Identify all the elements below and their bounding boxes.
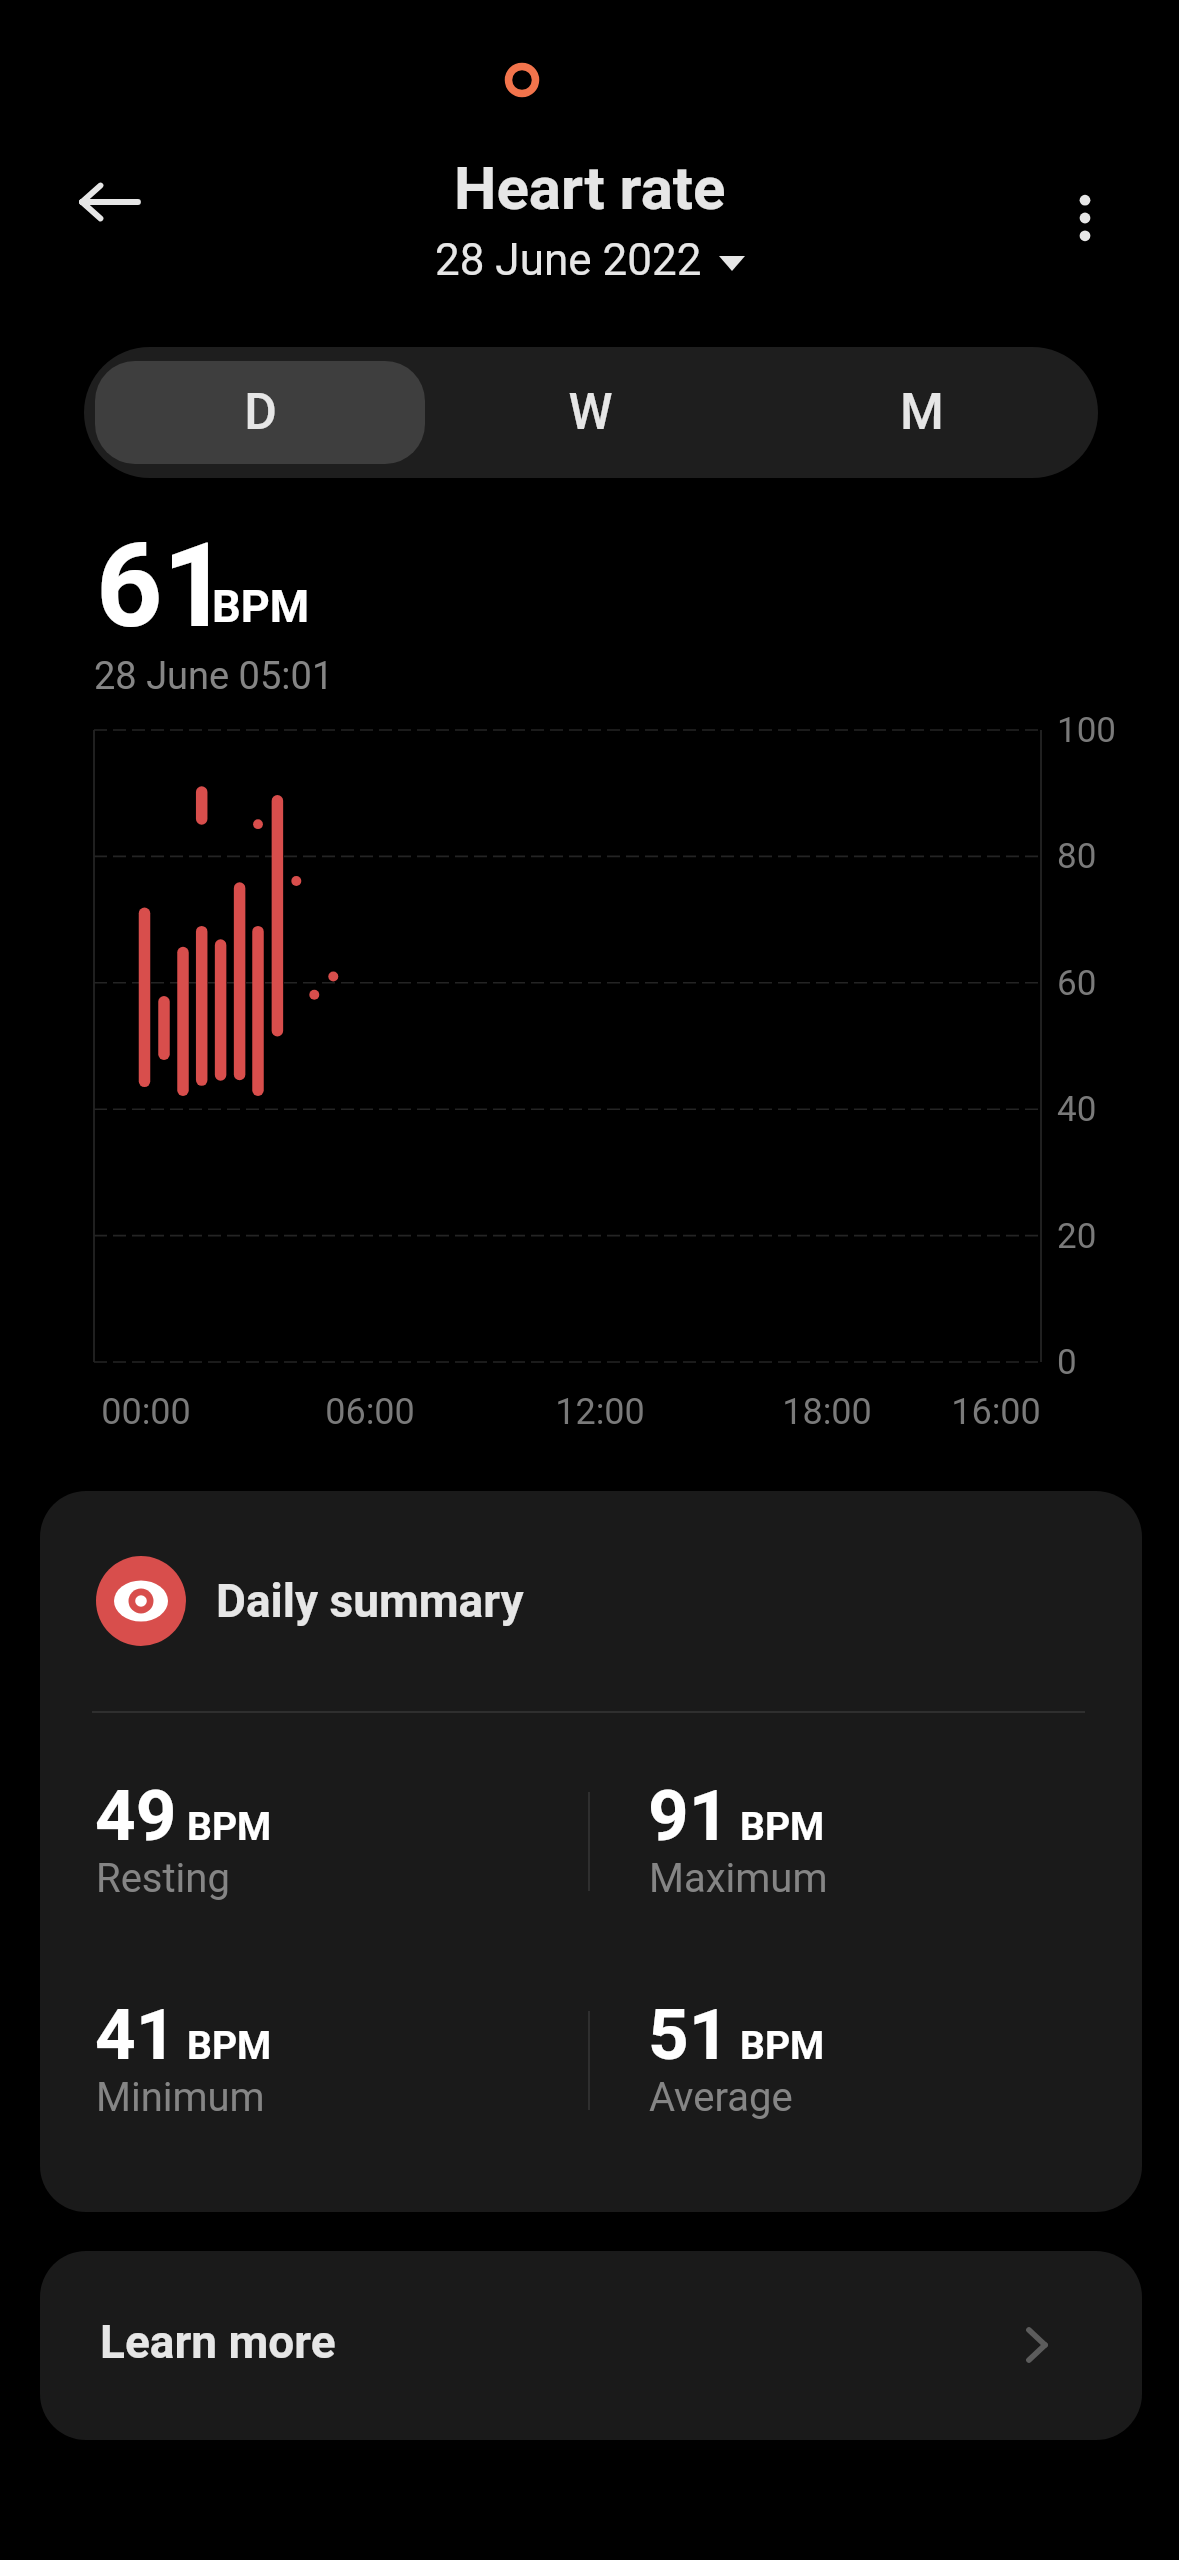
staticText: 16:00	[916, 1391, 1076, 1433]
staticText: 00:00	[66, 1391, 226, 1433]
staticText: M	[900, 383, 944, 442]
staticText: 91	[648, 1774, 730, 1857]
staticText: 40	[1057, 1089, 1097, 1130]
staticText: 06:00	[290, 1391, 450, 1433]
other: Open	[1026, 2327, 1048, 2363]
staticText: Learn more	[100, 2315, 336, 2369]
staticText: 51	[648, 1993, 730, 2076]
staticText: Maximum	[649, 1855, 828, 1902]
staticText: 20	[1057, 1216, 1097, 1257]
staticText: 12:00	[520, 1391, 680, 1433]
staticText: BPM	[740, 2023, 825, 2069]
staticText: BPM	[187, 2023, 272, 2069]
button[interactable]: M	[756, 361, 1087, 464]
button[interactable]: Back	[54, 146, 166, 258]
staticText: 80	[1057, 836, 1097, 877]
button[interactable]: More options	[1029, 162, 1141, 274]
staticText: 49	[95, 1774, 177, 1857]
staticText: Daily summary	[216, 1574, 524, 1628]
button[interactable]: D	[95, 361, 425, 464]
button[interactable]: W	[425, 361, 756, 464]
staticText: 61	[96, 518, 230, 654]
staticText: BPM	[187, 1804, 272, 1850]
staticText: W	[568, 383, 613, 442]
staticText: Average	[649, 2074, 793, 2121]
button[interactable]: Daily summary	[40, 1491, 1142, 2212]
staticText: 60	[1057, 963, 1097, 1004]
button[interactable]: Learn more	[40, 2251, 1142, 2440]
button[interactable]: 28 June 2022	[425, 231, 755, 289]
staticText: 0	[1057, 1342, 1077, 1383]
staticText: Heart rate	[454, 153, 726, 223]
staticText: BPM	[740, 1804, 825, 1850]
staticText: BPM	[212, 580, 310, 633]
staticText: Minimum	[96, 2074, 265, 2121]
staticText: D	[244, 383, 277, 442]
staticText: 28 June 05:01	[94, 654, 334, 699]
staticText: Resting	[96, 1855, 230, 1902]
staticText: 18:00	[747, 1391, 907, 1433]
staticText: 100	[1057, 710, 1117, 751]
staticText: 28 June 2022	[435, 234, 702, 286]
staticText: 41	[95, 1993, 177, 2076]
